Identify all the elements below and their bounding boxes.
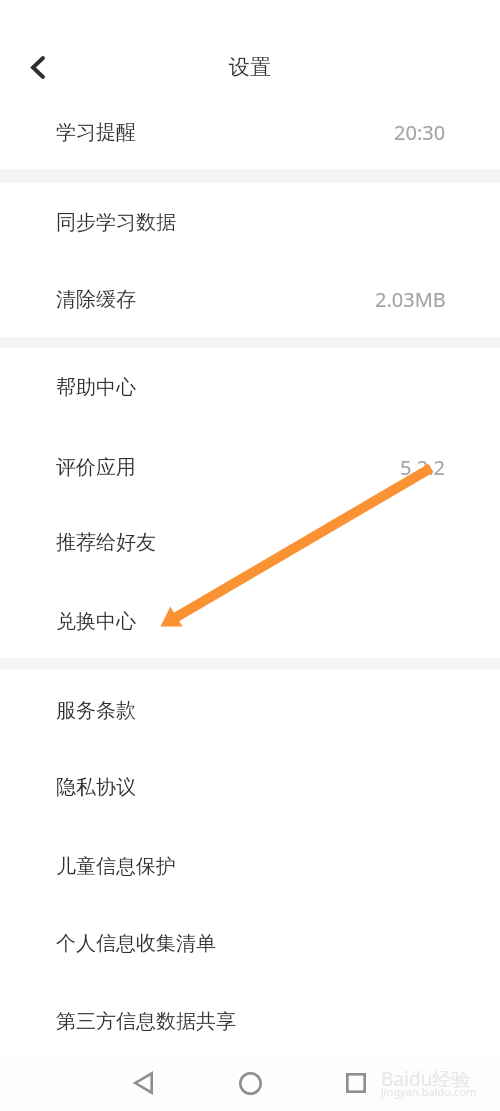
staticText: 第三方信息数据共享 (56, 1009, 236, 1034)
staticText: 设置 (229, 54, 271, 80)
staticText: 2.03MB (375, 286, 446, 313)
staticText: Baidu经验 (381, 1066, 471, 1092)
button[interactable]: 清除缓存 (0, 260, 500, 337)
staticText: 服务条款 (56, 698, 136, 723)
button[interactable]: Back (16, 45, 60, 89)
button[interactable]: 同步学习数据 (0, 183, 500, 260)
staticText: jingyan.baidu.com (381, 1084, 477, 1099)
button[interactable]: Home (226, 1059, 274, 1107)
button[interactable]: Back (119, 1059, 167, 1107)
button[interactable]: 隐私协议 (0, 747, 500, 825)
staticText: 20:30 (394, 119, 446, 146)
button[interactable]: 帮助中心 (0, 348, 500, 426)
staticText: 个人信息收集清单 (56, 931, 216, 956)
button[interactable]: Recents (332, 1059, 380, 1107)
button[interactable]: 兑换中心 (0, 581, 500, 658)
button[interactable]: 推荐给好友 (0, 503, 500, 581)
button[interactable]: 个人信息收集清单 (0, 902, 500, 980)
staticText: 推荐给好友 (56, 530, 156, 555)
button[interactable]: 服务条款 (0, 669, 500, 747)
staticText: 隐私协议 (56, 775, 136, 800)
button[interactable]: 评价应用 (0, 426, 500, 503)
staticText: 评价应用 (56, 455, 136, 480)
staticText: 帮助中心 (56, 375, 136, 400)
staticText: 清除缓存 (56, 287, 136, 312)
button[interactable]: 学习提醒 (0, 94, 500, 169)
staticText: 兑换中心 (56, 609, 136, 634)
staticText: 同步学习数据 (56, 210, 176, 235)
button[interactable]: 第三方信息数据共享 (0, 980, 500, 1058)
staticText: 学习提醒 (56, 120, 136, 145)
staticText: 5.2.2 (400, 454, 446, 481)
staticText: 儿童信息保护 (56, 854, 176, 879)
button[interactable]: 儿童信息保护 (0, 825, 500, 902)
